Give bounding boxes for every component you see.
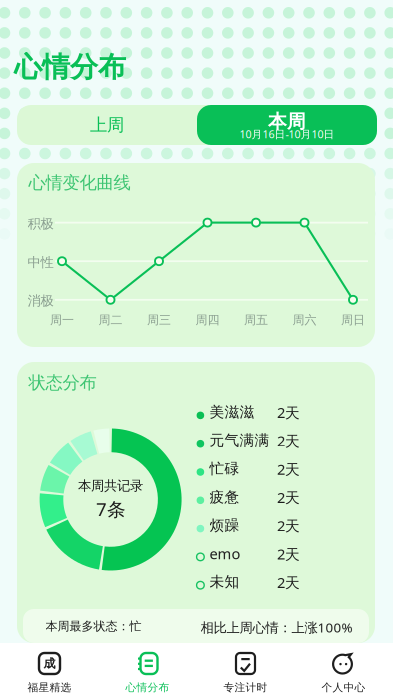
- staticText: 元气满满: [209, 431, 269, 449]
- button[interactable]: 心情分布: [98, 643, 196, 700]
- staticText: 周日: [341, 313, 365, 327]
- staticText: 美滋滋: [209, 403, 254, 421]
- button[interactable]: 成: [0, 643, 98, 700]
- staticText: 个人中心: [321, 681, 365, 694]
- staticText: 中性: [27, 254, 53, 270]
- staticText: 周四: [196, 313, 220, 327]
- staticText: 消极: [27, 292, 53, 309]
- staticText: 2天: [277, 516, 300, 535]
- staticText: 本周最多状态：忙: [45, 619, 141, 634]
- staticText: 本周: [268, 110, 306, 133]
- staticText: 忙碌: [209, 460, 239, 478]
- staticText: 2天: [277, 572, 300, 592]
- staticText: 专注计时: [223, 681, 267, 694]
- staticText: 相比上周心情：上涨100%: [200, 618, 352, 636]
- staticText: 福星精选: [27, 681, 71, 694]
- staticText: 心情变化曲线: [28, 172, 130, 193]
- staticText: 状态分布: [28, 372, 96, 393]
- staticText: 上周: [90, 114, 124, 136]
- staticText: 10月16日-10月10日: [239, 127, 334, 141]
- staticText: 周五: [244, 313, 268, 327]
- staticText: 心情分布: [14, 50, 126, 84]
- staticText: 周一: [50, 313, 74, 327]
- staticText: 2天: [277, 431, 300, 450]
- staticText: 2天: [277, 403, 300, 422]
- staticText: 积极: [27, 215, 53, 232]
- staticText: 2天: [277, 488, 300, 507]
- button[interactable]: 专注计时: [196, 643, 294, 700]
- staticText: 本周共记录: [78, 477, 143, 494]
- staticText: 疲惫: [209, 488, 239, 506]
- staticText: 2天: [277, 459, 300, 479]
- staticText: 成: [43, 656, 55, 671]
- button[interactable]: 上周: [17, 105, 197, 145]
- staticText: emo: [209, 544, 240, 563]
- staticText: 烦躁: [209, 516, 239, 534]
- staticText: 周三: [147, 313, 171, 327]
- button[interactable]: 个人中心: [294, 643, 392, 700]
- staticText: 周六: [293, 313, 317, 327]
- staticText: 心情分布: [125, 681, 169, 694]
- staticText: 周二: [98, 313, 122, 327]
- staticText: 2天: [277, 544, 300, 564]
- staticText: 7条: [96, 496, 126, 521]
- button[interactable]: 本周: [197, 105, 377, 145]
- staticText: 未知: [209, 573, 239, 591]
